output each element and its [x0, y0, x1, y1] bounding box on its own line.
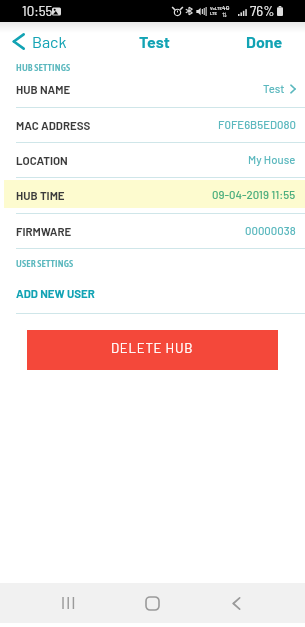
staticText: ADD NEW USER	[16, 286, 95, 300]
button[interactable]: ADD NEW USER	[0, 277, 305, 308]
button[interactable]: Back	[0, 29, 75, 54]
button[interactable]: Home	[132, 583, 172, 623]
staticText: 00000038	[245, 224, 296, 238]
staticText: 09-04-2019 11:55	[212, 188, 296, 202]
button[interactable]: FIRMWARE	[0, 213, 305, 248]
staticText: HUB SETTINGS	[16, 62, 71, 73]
button[interactable]: DELETE HUB	[27, 330, 278, 370]
button[interactable]: MAC ADDRESS	[0, 107, 305, 142]
staticText: My House	[248, 153, 296, 167]
staticText: Back	[32, 32, 67, 51]
staticText: MAC ADDRESS	[16, 118, 91, 132]
staticText: Test	[263, 82, 285, 96]
staticText: ⇅	[222, 11, 228, 18]
staticText: Test	[139, 32, 170, 51]
staticText: VoLTE	[210, 6, 222, 11]
staticText: LOCATION	[16, 153, 68, 167]
staticText: DELETE HUB	[111, 340, 194, 356]
staticText: LTE	[210, 11, 218, 16]
staticText: HUB TIME	[16, 188, 65, 202]
staticText: HUB NAME	[16, 82, 71, 96]
staticText: FIRMWARE	[16, 224, 72, 238]
button[interactable]: HUB TIME	[0, 177, 305, 212]
button[interactable]: HUB NAME	[0, 71, 305, 106]
staticText: 10:55	[22, 3, 53, 19]
button[interactable]: LOCATION	[0, 142, 305, 177]
staticText: 76%	[250, 3, 275, 19]
staticText: F0FE6B5ED080	[218, 118, 296, 132]
button[interactable]: Recent apps	[47, 583, 87, 623]
staticText: USER SETTINGS	[16, 258, 74, 269]
button[interactable]: Done	[232, 28, 305, 55]
staticText: 4G	[222, 4, 230, 11]
button[interactable]: Back	[216, 583, 256, 623]
